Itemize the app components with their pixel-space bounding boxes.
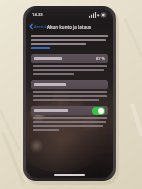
button[interactable]: Optimoitu akun lataus <box>92 107 105 115</box>
button[interactable] <box>31 80 108 89</box>
staticText: 87 % <box>96 56 105 61</box>
button[interactable]: 87 % <box>31 54 108 63</box>
button[interactable] <box>31 46 50 50</box>
button[interactable]: Asetukset <box>26 22 57 31</box>
button[interactable]: Optimoitu akun lataus <box>31 106 108 115</box>
staticText: Asetukset <box>34 24 53 29</box>
staticText: Akun kunto ja lataus <box>47 24 92 30</box>
staticText: 14.33 <box>32 12 43 18</box>
